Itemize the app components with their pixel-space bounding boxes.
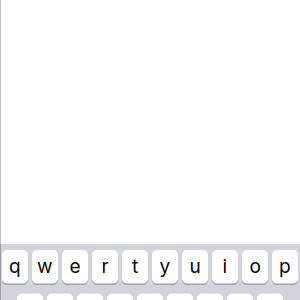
button[interactable]: w: [32, 250, 58, 283]
button[interactable]: o: [242, 250, 268, 283]
staticText: o: [249, 255, 260, 278]
button[interactable]: s: [47, 293, 73, 300]
staticText: t: [132, 255, 138, 278]
button[interactable]: l: [257, 293, 283, 300]
button[interactable]: e: [62, 250, 88, 283]
button[interactable]: g: [137, 293, 163, 300]
button[interactable]: k: [227, 293, 253, 300]
button[interactable]: d: [77, 293, 103, 300]
button[interactable]: f: [107, 293, 133, 300]
staticText: q: [9, 255, 21, 278]
staticText: y: [159, 255, 170, 278]
button[interactable]: y: [152, 250, 178, 283]
staticText: e: [69, 255, 80, 278]
staticText: w: [37, 255, 53, 278]
button[interactable]: p: [272, 250, 298, 283]
staticText: p: [279, 255, 291, 278]
staticText: i: [222, 255, 227, 278]
staticText: r: [101, 255, 108, 278]
button[interactable]: i: [212, 250, 238, 283]
button[interactable]: r: [92, 250, 118, 283]
button[interactable]: h: [167, 293, 193, 300]
button[interactable]: q: [2, 250, 28, 283]
button[interactable]: u: [182, 250, 208, 283]
staticText: u: [189, 255, 200, 278]
button[interactable]: a: [17, 293, 43, 300]
button[interactable]: t: [122, 250, 148, 283]
button[interactable]: j: [197, 293, 223, 300]
